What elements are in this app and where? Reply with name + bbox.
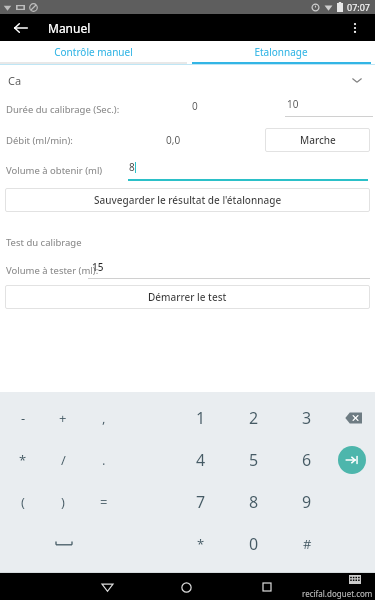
staticText: * xyxy=(19,451,27,469)
staticText: recifal.doguet.com xyxy=(302,588,373,599)
button[interactable]: Recent apps xyxy=(255,575,279,599)
button[interactable]: 3 xyxy=(289,404,325,432)
button[interactable]: / xyxy=(45,446,81,474)
button[interactable]: More options xyxy=(343,16,367,40)
other: Expand xyxy=(351,74,363,86)
staticText: 0 xyxy=(249,533,259,555)
staticText: Volume à tester (ml): xyxy=(6,264,99,277)
button[interactable]: 1 xyxy=(183,404,219,432)
button[interactable]: , xyxy=(86,404,122,432)
button[interactable]: 6 xyxy=(289,446,325,474)
staticText: 07:07 xyxy=(347,1,371,13)
staticText: Démarrer le test xyxy=(148,290,227,304)
staticText: Durée du calibrage (Sec.): xyxy=(6,103,120,116)
staticText: 9 xyxy=(302,491,312,513)
button[interactable]: 10 xyxy=(285,97,373,113)
button[interactable]: 0 xyxy=(236,530,272,558)
staticText: 4 xyxy=(196,449,206,471)
staticText: Manuel xyxy=(48,20,91,36)
staticText: 7 xyxy=(196,491,206,513)
other: Keyboard xyxy=(349,575,361,584)
staticText: 6 xyxy=(302,449,312,471)
button[interactable]: Démarrer le test xyxy=(5,285,370,309)
button[interactable]: 4 xyxy=(183,446,219,474)
staticText: 1 xyxy=(196,407,206,429)
button[interactable]: - xyxy=(5,404,41,432)
button[interactable]: + xyxy=(45,404,81,432)
button[interactable]: Back xyxy=(95,575,119,599)
button[interactable]: 8 xyxy=(236,488,272,516)
button[interactable]: 15 xyxy=(88,259,370,279)
staticText: Débit (ml/min): xyxy=(6,134,73,147)
staticText: = xyxy=(100,493,108,511)
staticText: . xyxy=(102,451,106,469)
button[interactable]: 5 xyxy=(236,446,272,474)
staticText: Ca xyxy=(8,73,22,88)
staticText: Etalonnage xyxy=(254,45,308,59)
button[interactable]: 2 xyxy=(236,404,272,432)
staticText: 8 xyxy=(129,160,135,174)
staticText: Volume à obtenir (ml) xyxy=(6,164,103,177)
staticText: 2 xyxy=(249,407,259,429)
button[interactable]: ) xyxy=(45,488,81,516)
staticText: Sauvegarder le résultat de l'étalonnage xyxy=(94,193,282,207)
button[interactable]: 8 xyxy=(128,159,368,181)
staticText: / xyxy=(61,451,66,469)
staticText: 0,0 xyxy=(166,133,181,147)
button[interactable]: Contrôle manuel xyxy=(0,41,187,62)
staticText: ) xyxy=(61,493,65,511)
button[interactable]: Backspace xyxy=(339,407,367,429)
button[interactable]: Space xyxy=(47,533,81,555)
staticText: Test du calibrage xyxy=(6,236,82,249)
staticText: 15 xyxy=(92,260,104,274)
button[interactable]: Etalonnage xyxy=(187,41,375,62)
staticText: # xyxy=(303,535,312,553)
button[interactable]: Sauvegarder le résultat de l'étalonnage xyxy=(5,188,370,212)
button[interactable]: # xyxy=(289,530,325,558)
button[interactable]: Back xyxy=(10,17,32,39)
staticText: 10 xyxy=(287,97,299,111)
staticText: 5 xyxy=(249,449,259,471)
button[interactable]: Marche xyxy=(265,128,370,152)
button[interactable]: = xyxy=(86,488,122,516)
staticText: 0 xyxy=(192,99,198,113)
button[interactable]: ( xyxy=(5,488,41,516)
staticText: + xyxy=(59,409,67,427)
staticText: * xyxy=(197,535,205,553)
button[interactable]: 9 xyxy=(289,488,325,516)
staticText: Contrôle manuel xyxy=(54,45,133,59)
staticText: - xyxy=(21,409,26,427)
staticText: , xyxy=(102,409,106,427)
button[interactable]: Enter xyxy=(338,446,366,474)
staticText: Marche xyxy=(300,133,336,147)
button[interactable]: Ca xyxy=(0,65,375,95)
staticText: ( xyxy=(21,493,25,511)
button[interactable]: 7 xyxy=(183,488,219,516)
button[interactable]: Home xyxy=(174,575,198,599)
staticText: 8 xyxy=(249,491,259,513)
staticText: 3 xyxy=(302,407,312,429)
button[interactable]: * xyxy=(5,446,41,474)
button[interactable]: * xyxy=(183,530,219,558)
button[interactable]: . xyxy=(86,446,122,474)
